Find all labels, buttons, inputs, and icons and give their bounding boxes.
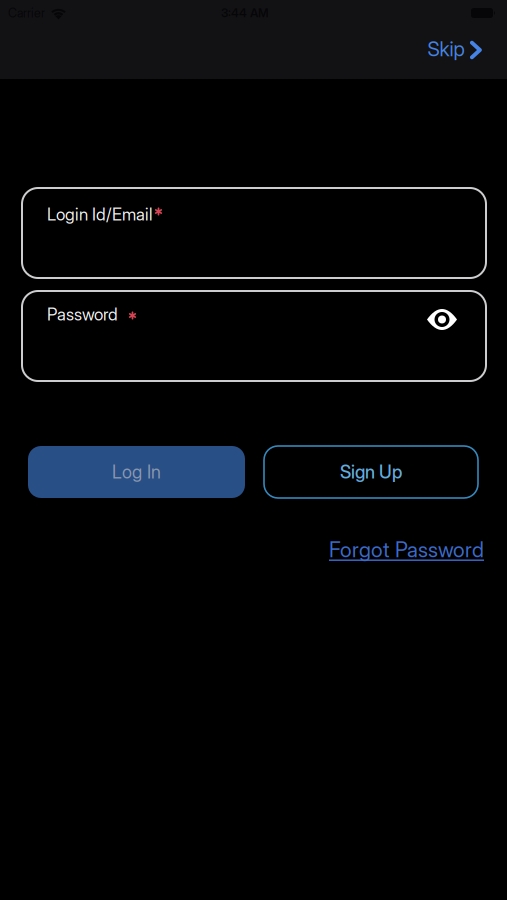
button[interactable]: Login Id/Email — [22, 188, 486, 278]
staticText: Login Id/Email — [47, 204, 153, 225]
button[interactable]: Skip — [427, 37, 482, 61]
button[interactable]: Password — [22, 291, 486, 381]
staticText: 3:44 AM — [221, 6, 269, 20]
staticText: Sign Up — [340, 461, 402, 483]
staticText: Password — [47, 304, 118, 325]
button[interactable]: Forgot Password — [329, 537, 484, 562]
button[interactable]: Log In — [28, 446, 245, 498]
button[interactable]: Sign Up — [264, 446, 478, 498]
staticText: Carrier — [8, 5, 45, 20]
staticText: Skip — [427, 37, 464, 61]
staticText: Forgot Password — [329, 537, 484, 562]
staticText: Log In — [112, 461, 161, 483]
